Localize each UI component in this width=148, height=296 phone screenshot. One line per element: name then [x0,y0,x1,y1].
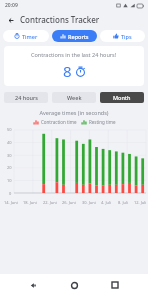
staticText: 8 [63,61,72,81]
staticText: Week [67,94,82,101]
button[interactable]: Recent apps [107,277,123,293]
staticText: 22. Juni [43,200,57,205]
staticText: 20:09 [5,2,18,9]
staticText: 26. Juni [62,200,76,205]
button[interactable]: Week [52,92,96,103]
button[interactable]: Tips [100,30,145,42]
button[interactable]: Timer [3,30,49,42]
staticText: Contractions in the last 24 hours! [31,51,117,58]
staticText: Timer [22,33,38,40]
staticText: Tips [121,33,132,40]
button[interactable]: Home [66,277,82,293]
staticText: 40 [7,140,12,145]
staticText: 14. Juni [4,200,18,205]
staticText: 30 [7,153,12,158]
button[interactable]: Back [25,277,41,293]
staticText: 8. Juli [118,200,129,205]
button[interactable]: Month [100,92,144,103]
staticText: 4. Juli [101,200,112,205]
staticText: 50 [7,127,12,132]
staticText: 30. Juni [82,200,96,205]
button[interactable]: Contractions in the last 24 hours! [4,46,144,86]
staticText: Contraction time [41,119,77,125]
staticText: Reports [68,33,89,40]
staticText: 12. Juli [134,200,147,205]
staticText: Month [113,94,131,101]
staticText: 10 [7,178,12,183]
staticText: 18. Juni [23,200,37,205]
button[interactable]: 24 hours [4,92,48,103]
button[interactable]: Reports [52,30,97,42]
staticText: Average times (in seconds) [0,109,148,116]
staticText: Resting time [89,119,116,125]
button[interactable]: Back [5,14,17,26]
staticText: 0 [9,191,12,196]
staticText: 24 hours [15,94,38,101]
staticText: 20 [7,165,12,170]
staticText: Contractions Tracker [20,14,100,25]
